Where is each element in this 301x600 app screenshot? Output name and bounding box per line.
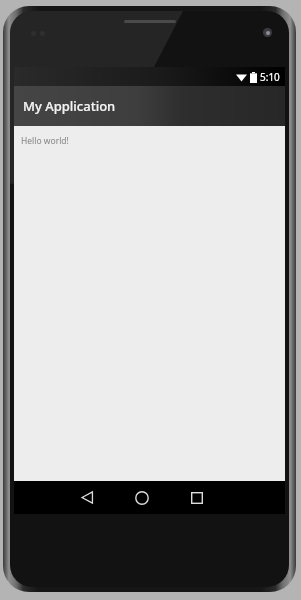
button[interactable]: Back [70, 481, 104, 514]
button[interactable]: Home [125, 481, 159, 514]
button[interactable]: Recent apps [180, 481, 214, 514]
staticText: 5:10 [260, 70, 280, 84]
staticText: Hello world! [21, 135, 69, 147]
staticText: My Application [23, 97, 116, 115]
